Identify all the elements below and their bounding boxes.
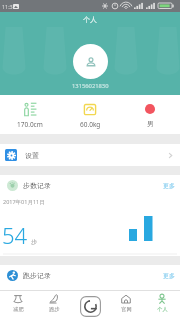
- button[interactable]: 跑步记录: [0, 265, 180, 286]
- staticText: 步: [31, 238, 37, 246]
- staticText: 11:33: [2, 3, 16, 10]
- button[interactable]: 设置: [0, 144, 180, 166]
- staticText: 更多: [163, 182, 175, 190]
- button[interactable]: 减肥: [0, 290, 36, 320]
- staticText: 2017年01月11日: [3, 198, 45, 206]
- button[interactable]: 步数记录: [0, 175, 180, 196]
- staticText: 13156021830: [72, 82, 109, 90]
- button[interactable]: Profile avatar: [73, 44, 108, 79]
- staticText: 官网: [121, 306, 132, 313]
- button[interactable]: 60.0kg: [60, 101, 120, 129]
- staticText: 减肥: [13, 306, 24, 313]
- staticText: 男: [147, 120, 154, 128]
- button[interactable]: Home logo: [72, 290, 108, 320]
- staticText: 54: [2, 220, 28, 250]
- staticText: 跑步记录: [23, 271, 51, 280]
- staticText: 步数记录: [23, 181, 51, 190]
- button[interactable]: 170.0cm: [0, 101, 60, 129]
- staticText: 个人: [157, 306, 168, 313]
- button[interactable]: 男: [120, 101, 180, 128]
- button[interactable]: 跑步: [36, 290, 72, 320]
- staticText: 个人: [83, 15, 97, 24]
- staticText: 60.0kg: [80, 120, 101, 129]
- staticText: 更多: [163, 272, 175, 280]
- button[interactable]: 个人: [144, 290, 180, 320]
- staticText: 170.0cm: [17, 120, 43, 129]
- staticText: 跑步: [49, 306, 60, 313]
- staticText: 设置: [25, 151, 39, 160]
- button[interactable]: 官网: [108, 290, 144, 320]
